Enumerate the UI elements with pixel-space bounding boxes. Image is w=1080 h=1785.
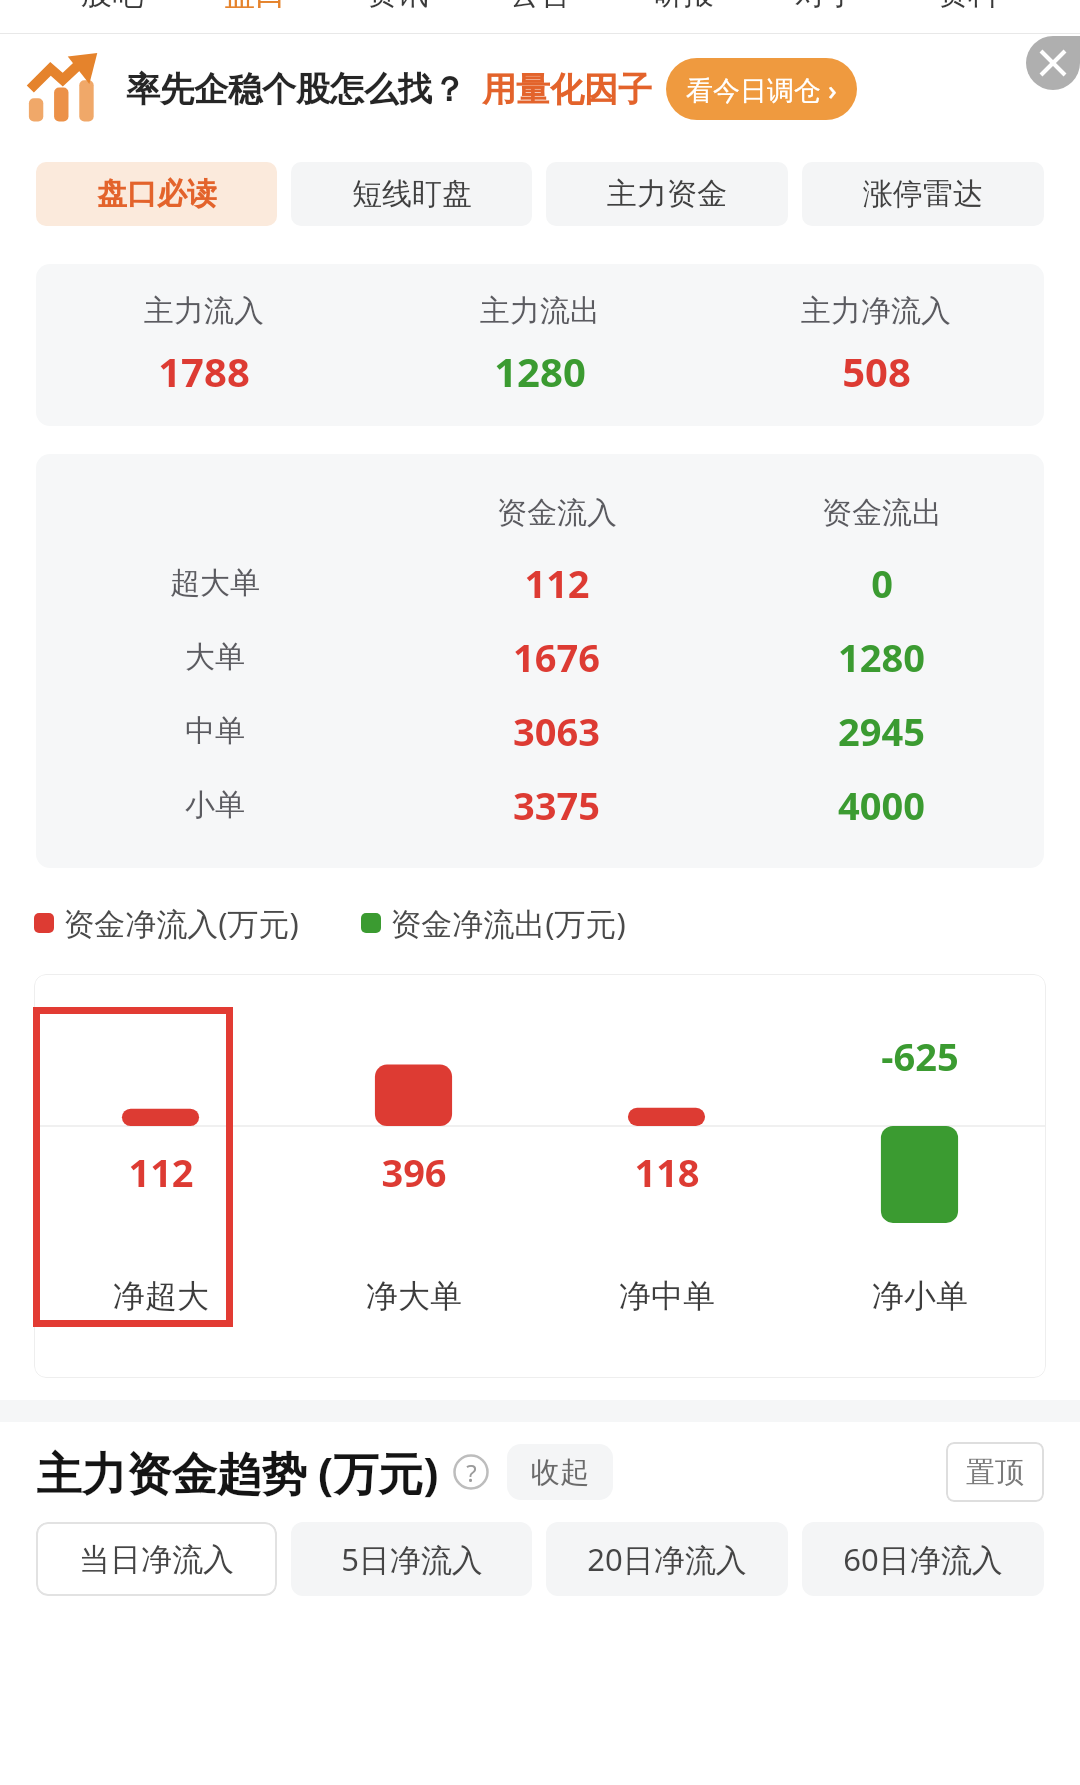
button[interactable]: 超大单: [36, 546, 1044, 620]
staticText: 资金流出: [822, 494, 942, 532]
staticText: -625: [881, 1030, 959, 1082]
button[interactable]: 收起: [507, 1444, 613, 1500]
button[interactable]: 112: [34, 974, 287, 1378]
staticText: 盘口: [224, 0, 286, 8]
staticText: 超大单: [170, 564, 260, 602]
staticText: 看今日调仓 ›: [686, 71, 837, 108]
button[interactable]: 涨停雷达: [802, 162, 1044, 226]
staticText: 盘口必读: [97, 175, 217, 213]
staticText: 3063: [513, 705, 600, 757]
button[interactable]: 主力流入: [36, 264, 1044, 426]
button[interactable]: 主力资金: [546, 162, 788, 226]
button[interactable]: 率先企稳个股怎么找？: [0, 34, 1080, 144]
staticText: 净小单: [872, 1276, 968, 1316]
button[interactable]: -625: [793, 974, 1046, 1378]
button[interactable]: 置顶: [946, 1442, 1044, 1502]
staticText: 主力流出: [480, 292, 600, 330]
button[interactable]: 5日净流入: [291, 1522, 532, 1596]
staticText: 资料: [937, 0, 999, 8]
staticText: 主力流入: [144, 292, 264, 330]
staticText: 股吧: [81, 0, 143, 8]
button[interactable]: 短线盯盘: [291, 162, 532, 226]
button[interactable]: 396: [287, 974, 540, 1378]
staticText: 5日净流入: [341, 1538, 483, 1580]
button[interactable]: 资讯: [366, 0, 428, 8]
button[interactable]: 股吧: [81, 0, 143, 8]
staticText: 主力资金: [607, 175, 727, 213]
staticText: 20日净流入: [587, 1538, 747, 1580]
staticText: 涨停雷达: [863, 175, 983, 213]
button[interactable]: 60日净流入: [802, 1522, 1044, 1596]
staticText: 资金净流入(万元): [63, 902, 299, 944]
button[interactable]: 118: [540, 974, 793, 1378]
button[interactable]: 中单: [36, 694, 1044, 768]
staticText: 置顶: [966, 1454, 1024, 1491]
staticText: 1280: [838, 631, 925, 683]
staticText: 1280: [494, 344, 586, 398]
staticText: 净超大: [113, 1276, 209, 1316]
staticText: 收起: [531, 1454, 589, 1491]
staticText: 当日净流入: [79, 1540, 234, 1579]
button[interactable]: 20日净流入: [546, 1522, 788, 1596]
button[interactable]: 关闭广告: [1026, 36, 1080, 90]
staticText: 112: [524, 557, 590, 609]
staticText: 用量化因子: [482, 68, 652, 111]
staticText: 大单: [185, 638, 245, 676]
staticText: 资讯: [366, 0, 428, 8]
staticText: 0: [871, 557, 893, 609]
button[interactable]: 看今日调仓 ›: [666, 58, 857, 120]
staticText: 小单: [185, 786, 245, 824]
button[interactable]: 盘口必读: [36, 162, 277, 226]
staticText: 1676: [513, 631, 600, 683]
button[interactable]: 公告: [509, 0, 571, 8]
staticText: 对手: [795, 0, 857, 8]
staticText: 4000: [838, 779, 925, 831]
button[interactable]: 研报: [652, 0, 714, 8]
staticText: 112: [128, 1146, 194, 1198]
staticText: 主力资金趋势 (万元): [36, 1442, 439, 1503]
staticText: 中单: [185, 712, 245, 750]
staticText: 净大单: [366, 1276, 462, 1316]
button[interactable]: 盘口: [224, 0, 286, 8]
staticText: 率先企稳个股怎么找？: [126, 68, 466, 111]
staticText: 主力净流入: [801, 292, 951, 330]
staticText: 1788: [158, 344, 250, 398]
button[interactable]: 对手: [795, 0, 857, 8]
staticText: 资金流入: [497, 494, 617, 532]
staticText: 短线盯盘: [352, 175, 472, 213]
staticText: 研报: [652, 0, 714, 8]
staticText: 净中单: [619, 1276, 715, 1316]
staticText: 公告: [509, 0, 571, 8]
staticText: 2945: [838, 705, 925, 757]
staticText: 396: [381, 1146, 447, 1198]
button[interactable]: 资料: [937, 0, 999, 8]
button[interactable]: 大单: [36, 620, 1044, 694]
staticText: 3375: [513, 779, 600, 831]
button[interactable]: 小单: [36, 768, 1044, 842]
button[interactable]: 说明: [453, 1454, 489, 1490]
staticText: 118: [634, 1146, 700, 1198]
button[interactable]: 当日净流入: [36, 1522, 277, 1596]
staticText: 508: [842, 344, 911, 398]
staticText: ?: [466, 1456, 477, 1489]
staticText: 60日净流入: [843, 1538, 1003, 1580]
staticText: 资金净流出(万元): [390, 902, 626, 944]
